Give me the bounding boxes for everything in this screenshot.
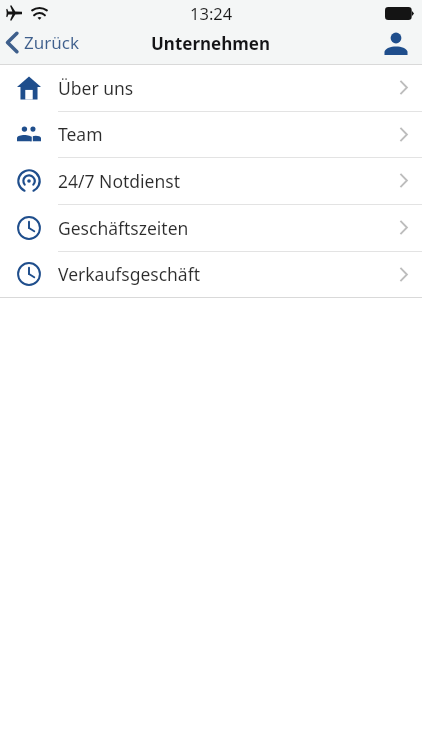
button[interactable]: Team	[0, 112, 422, 158]
staticText: Zurück	[24, 31, 79, 54]
staticText: 13:24	[190, 2, 233, 24]
button[interactable]: Profil	[372, 30, 422, 61]
button[interactable]: Verkaufsgeschäft	[0, 252, 422, 298]
staticText: Über uns	[58, 76, 134, 100]
button[interactable]: 24/7 Notdienst	[0, 158, 422, 205]
button[interactable]: Geschäftszeiten	[0, 205, 422, 252]
button[interactable]: Über uns	[0, 65, 422, 112]
staticText: Team	[58, 122, 103, 146]
staticText: Geschäftszeiten	[58, 216, 189, 240]
staticText: Verkaufsgeschäft	[58, 262, 201, 286]
staticText: Unternehmen	[151, 32, 271, 55]
button[interactable]: Zurück	[0, 31, 89, 59]
staticText: 24/7 Notdienst	[58, 169, 180, 193]
